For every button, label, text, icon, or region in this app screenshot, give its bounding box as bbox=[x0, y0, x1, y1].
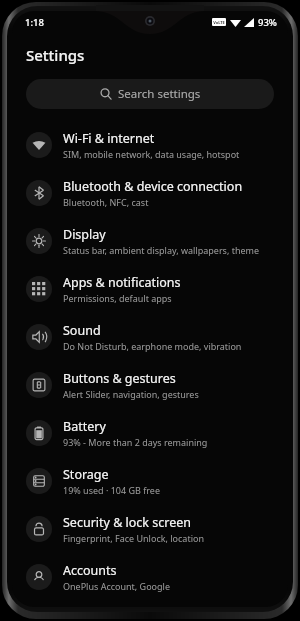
staticText: Do Not Disturb, earphone mode, vibration bbox=[63, 340, 242, 352]
staticText: Apps & notifications bbox=[63, 274, 181, 291]
button[interactable]: Wi-Fi & internet bbox=[12, 121, 288, 169]
staticText: Settings bbox=[26, 45, 85, 65]
staticText: Security & lock screen bbox=[63, 514, 192, 531]
staticText: SIM, mobile network, data usage, hotspot bbox=[63, 148, 240, 160]
staticText: Bluetooth & device connection bbox=[63, 178, 243, 195]
button[interactable]: Search settings bbox=[26, 79, 274, 109]
button[interactable]: Security & lock screen bbox=[12, 505, 288, 553]
staticText: VoLTE bbox=[213, 20, 225, 25]
button[interactable]: Bluetooth & device connection bbox=[12, 169, 288, 217]
staticText: Permissions, default apps bbox=[63, 292, 172, 304]
staticText: Wi-Fi & internet bbox=[63, 130, 155, 147]
button[interactable]: Storage bbox=[12, 457, 288, 505]
staticText: Sound bbox=[63, 322, 101, 339]
staticText: Display bbox=[63, 226, 106, 243]
staticText: Battery bbox=[63, 418, 106, 435]
staticText: OnePlus Account, Google bbox=[63, 580, 170, 592]
staticText: 93% bbox=[258, 16, 277, 29]
staticText: 93% - More than 2 days remaining bbox=[63, 436, 208, 448]
staticText: 19% used · 104 GB free bbox=[63, 484, 161, 496]
button[interactable]: Display bbox=[12, 217, 288, 265]
button[interactable]: Apps & notifications bbox=[12, 265, 288, 313]
staticText: Alert Slider, navigation, gestures bbox=[63, 388, 199, 400]
button[interactable]: Sound bbox=[12, 313, 288, 361]
staticText: Bluetooth, NFC, cast bbox=[63, 196, 149, 208]
button[interactable]: Buttons & gestures bbox=[12, 361, 288, 409]
staticText: Status bar, ambient display, wallpapers,… bbox=[63, 244, 260, 256]
staticText: Search settings bbox=[118, 86, 201, 102]
button[interactable]: Battery bbox=[12, 409, 288, 457]
staticText: Fingerprint, Face Unlock, location bbox=[63, 532, 204, 544]
button[interactable]: Accounts bbox=[12, 553, 288, 601]
staticText: Storage bbox=[63, 466, 109, 483]
staticText: 1:18 bbox=[25, 16, 44, 29]
staticText: Accounts bbox=[63, 562, 117, 579]
staticText: Buttons & gestures bbox=[63, 370, 176, 387]
